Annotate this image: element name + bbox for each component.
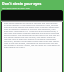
staticText: use dark mode in your app xyxy=(2,7,30,10)
staticText: Dark theme reduces eye strain in low lig… xyxy=(4,22,60,72)
staticText: Don't strain your eyes xyxy=(2,1,42,6)
